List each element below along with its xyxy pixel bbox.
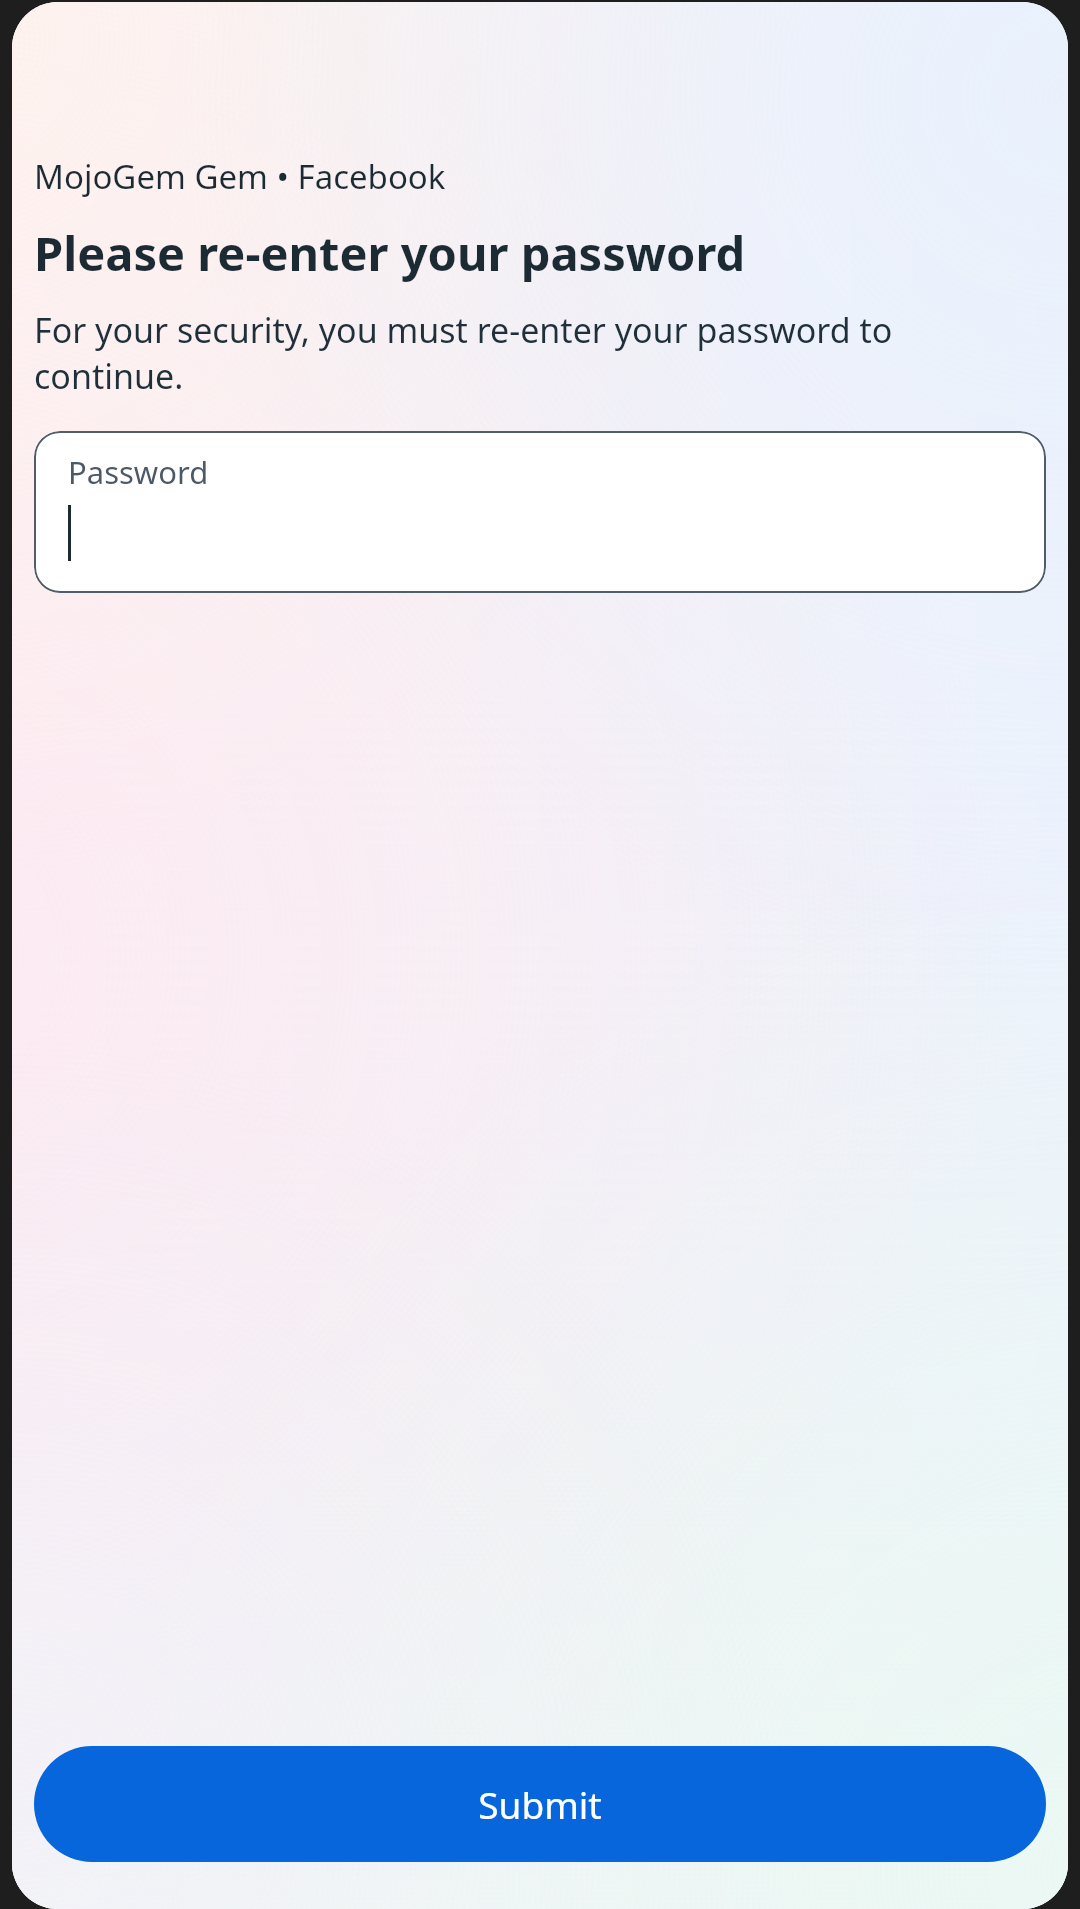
staticText: Submit bbox=[478, 1779, 602, 1829]
staticText: For your security, you must re-enter you… bbox=[34, 307, 1046, 399]
button[interactable]: Password bbox=[34, 431, 1046, 593]
staticText: Password bbox=[68, 451, 209, 493]
staticText: Please re-enter your password bbox=[34, 221, 746, 285]
button[interactable]: Submit bbox=[34, 1746, 1046, 1862]
staticText: MojoGem Gem • Facebook bbox=[34, 154, 446, 199]
